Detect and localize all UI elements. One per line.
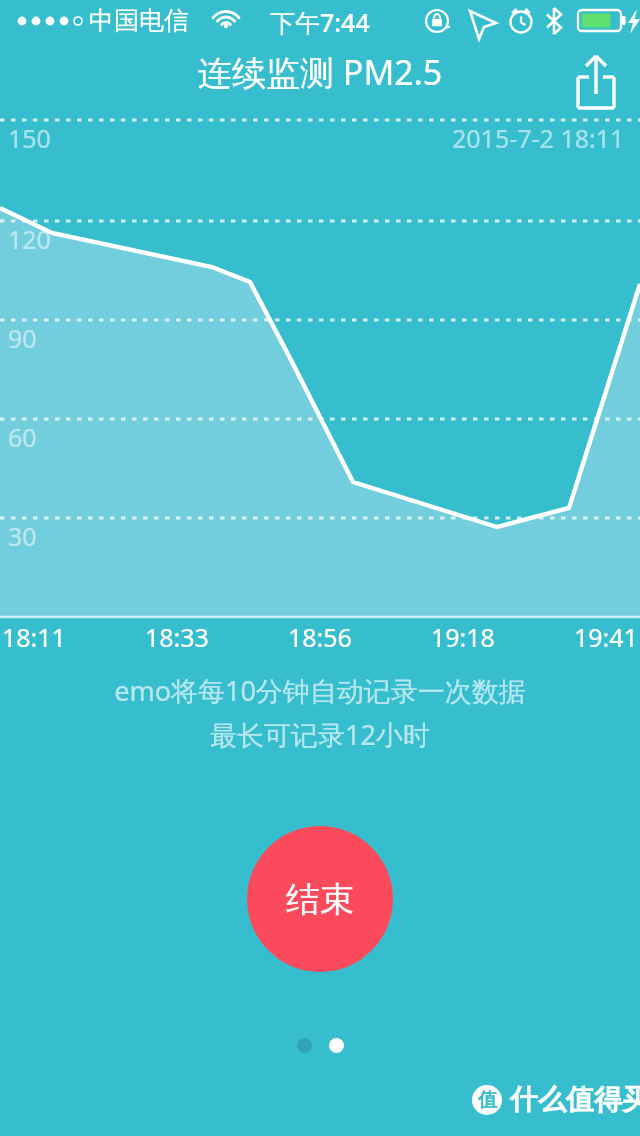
- staticText: 2015-7-2 18:11: [452, 121, 625, 155]
- staticText: 19:41: [574, 620, 638, 654]
- staticText: 60: [8, 420, 37, 454]
- staticText: 18:11: [2, 620, 66, 654]
- button[interactable]: 结束: [247, 826, 393, 972]
- staticText: 值: [478, 1088, 497, 1112]
- staticText: 18:33: [145, 620, 209, 654]
- staticText: 连续监测 PM2.5: [198, 49, 443, 95]
- button[interactable]: [329, 1038, 344, 1053]
- staticText: 30: [8, 519, 37, 553]
- staticText: 最长可记录12小时: [210, 716, 430, 753]
- button[interactable]: Share: [562, 48, 634, 120]
- staticText: 什么值得买: [510, 1082, 640, 1117]
- staticText: 中国电信: [89, 5, 189, 36]
- staticText: 120: [8, 222, 51, 256]
- staticText: 150: [8, 121, 51, 155]
- staticText: emo将每10分钟自动记录一次数据: [114, 672, 526, 709]
- staticText: 结束: [286, 878, 354, 921]
- staticText: 18:56: [288, 620, 352, 654]
- button[interactable]: [297, 1038, 312, 1053]
- staticText: 下午7:44: [270, 5, 370, 39]
- staticText: 90: [8, 321, 37, 355]
- staticText: 19:18: [431, 620, 495, 654]
